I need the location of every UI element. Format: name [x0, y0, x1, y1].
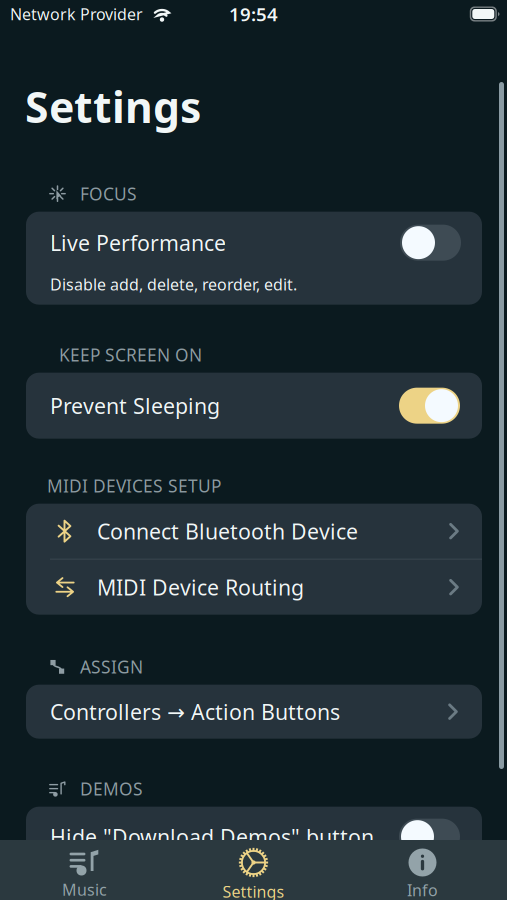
- staticText: DEMOS: [80, 777, 143, 800]
- staticText: Settings: [222, 881, 284, 900]
- staticText: Hide "Download Demos" button: [50, 822, 374, 851]
- staticText: Info: [407, 879, 438, 900]
- staticText: MIDI Device Routing: [97, 573, 304, 601]
- staticText: MIDI DEVICES SETUP: [47, 474, 221, 497]
- staticText: KEEP SCREEN ON: [59, 343, 202, 366]
- staticText: Connect Bluetooth Device: [97, 517, 358, 545]
- button[interactable]: Controllers → Action Buttons: [26, 685, 482, 739]
- staticText: Controllers → Action Buttons: [50, 697, 340, 726]
- staticText: FOCUS: [80, 182, 137, 205]
- button[interactable]: Live Performance: [26, 212, 482, 274]
- button[interactable]: Prevent Sleeping: [26, 373, 482, 439]
- staticText: Music: [62, 879, 107, 900]
- staticText: Live Performance: [50, 228, 226, 257]
- staticText: Prevent Sleeping: [50, 391, 220, 420]
- staticText: 19:54: [229, 2, 278, 26]
- staticText: Network Provider: [10, 3, 143, 25]
- button[interactable]: Connect Bluetooth Device: [26, 504, 482, 559]
- button[interactable]: Music: [0, 849, 169, 900]
- staticText: Disable add, delete, reorder, edit.: [50, 274, 297, 295]
- staticText: ASSIGN: [80, 655, 143, 678]
- button[interactable]: Info: [338, 848, 507, 900]
- staticText: Settings: [25, 78, 201, 135]
- button[interactable]: MIDI Device Routing: [26, 560, 482, 615]
- button[interactable]: Settings: [169, 847, 338, 900]
